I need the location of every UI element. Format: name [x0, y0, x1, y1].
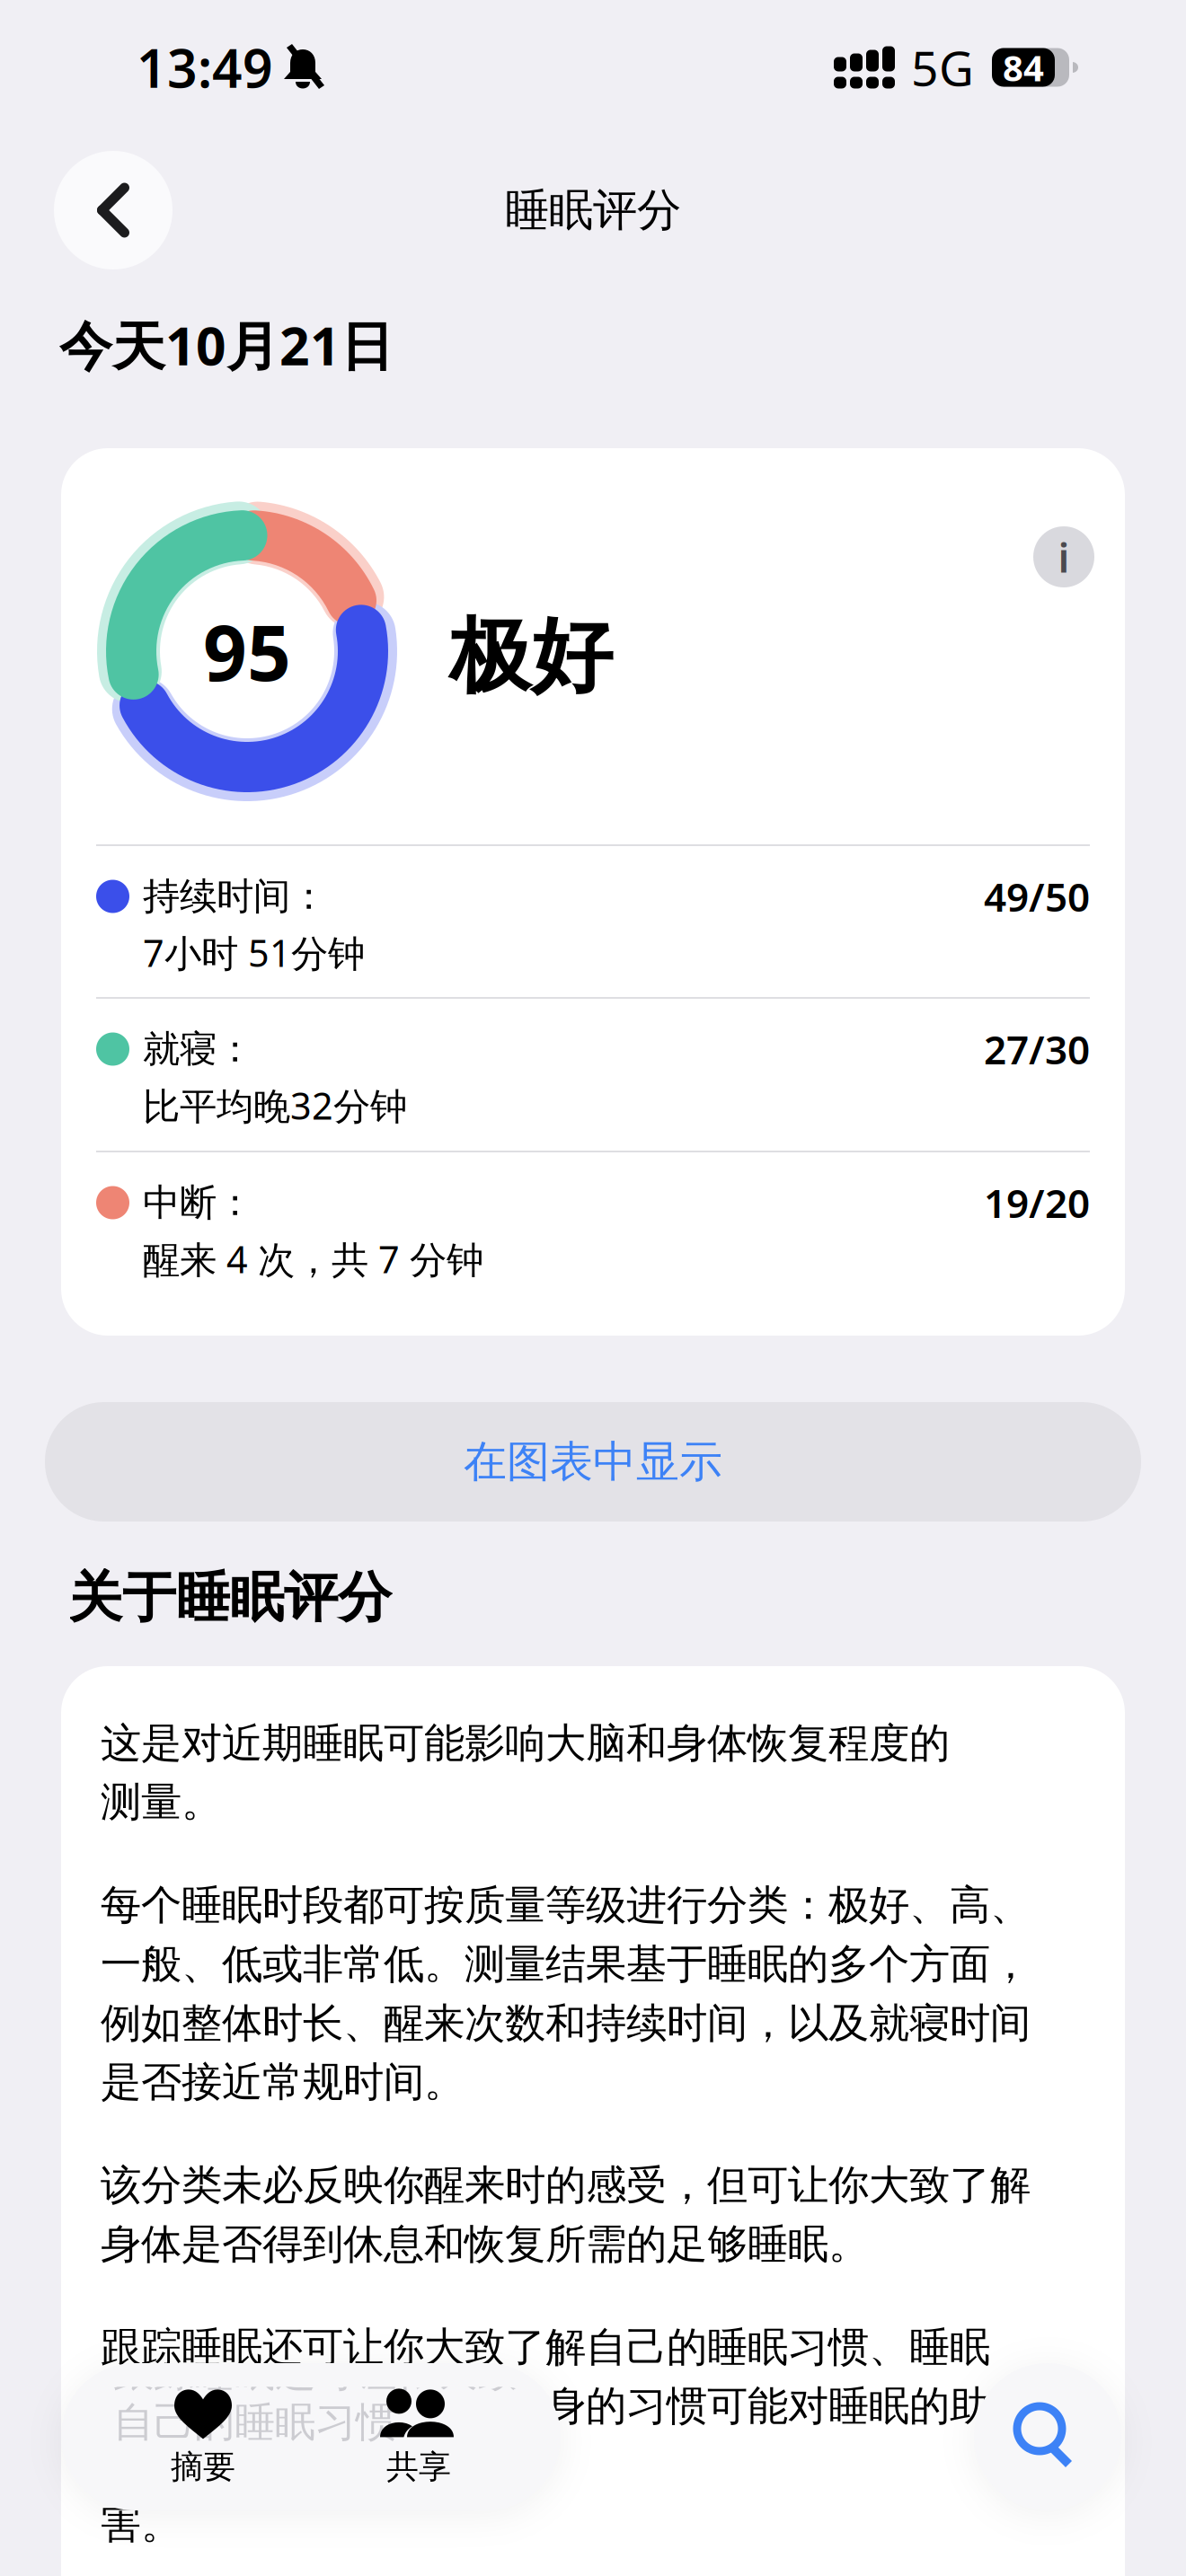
staticText: 睡眠评分 — [505, 183, 681, 237]
staticText: 13:49 — [137, 32, 273, 102]
button[interactable]: Info — [1033, 526, 1094, 587]
button[interactable]: 共享 — [311, 2363, 527, 2510]
staticText: 今天10月21日 — [59, 310, 394, 380]
staticText: 持续时间： — [143, 874, 327, 919]
staticText: 7小时 51分钟 — [143, 928, 365, 977]
staticText: i — [1058, 530, 1070, 584]
button[interactable]: 摘要 — [95, 2363, 311, 2510]
staticText: 49/50 — [984, 870, 1090, 923]
staticText: 5G — [911, 36, 974, 99]
staticText: 19/20 — [984, 1176, 1090, 1229]
staticText: 在图表中显示 — [464, 1435, 722, 1488]
staticText: 摘要 — [171, 2447, 235, 2487]
button[interactable]: 在图表中显示 — [45, 1402, 1141, 1522]
staticText: 这是对近期睡眠可能影响大脑和身体恢复程度的 测量。 — [101, 1718, 950, 1827]
staticText: 中断： — [143, 1180, 253, 1225]
staticText: 极好 — [449, 606, 613, 706]
button[interactable]: Back — [54, 151, 173, 269]
button[interactable]: Search — [974, 2363, 1121, 2510]
staticText: 共享 — [386, 2447, 451, 2487]
staticText: 就寝： — [143, 1026, 253, 1072]
staticText: 跟踪睡眠还可让你大致了解自己的睡眠习惯 — [113, 2347, 598, 2447]
staticText: 跟踪睡眠还可让你大致了解自己的睡眠习惯、睡眠 环境和整体健康，以及自身的习惯可能… — [101, 2322, 1071, 2549]
staticText: 27/30 — [984, 1023, 1090, 1075]
staticText: 每个睡眠时段都可按质量等级进行分类：极好、高、 一般、低或非常低。测量结果基于睡… — [101, 1880, 1031, 2107]
staticText: 关于睡眠评分 — [68, 1565, 392, 1631]
staticText: 95 — [203, 600, 291, 702]
staticText: 比平均晚32分钟 — [143, 1081, 407, 1130]
staticText: 该分类未必反映你醒来时的感受，但可让你大致了解 身体是否得到休息和恢复所需的足够… — [101, 2160, 1031, 2269]
staticText: 醒来 4 次，共 7 分钟 — [143, 1234, 483, 1283]
staticText: 84 — [1003, 43, 1044, 91]
